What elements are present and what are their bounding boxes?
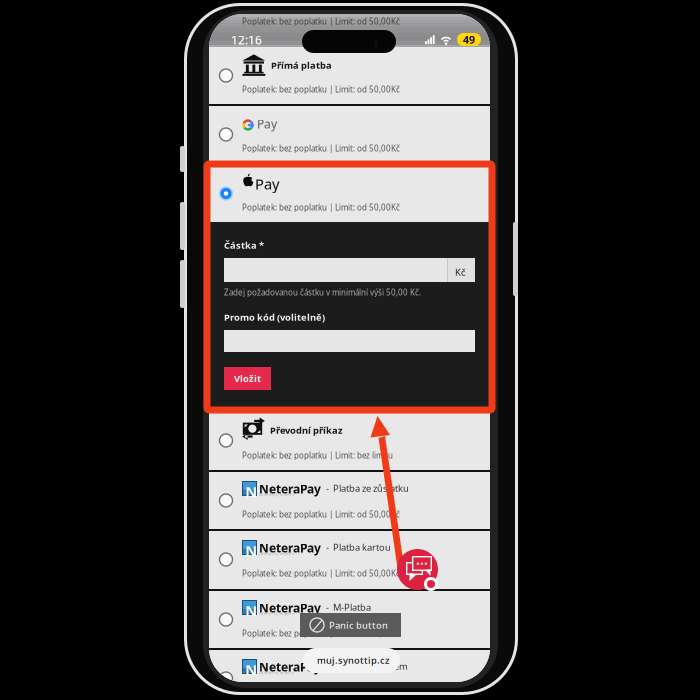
staticText: - Platba převodem bbox=[326, 660, 408, 672]
staticText: Poplatek: bez poplatku | Limit: od 50,00… bbox=[242, 202, 400, 213]
staticText: NeteraPay bbox=[259, 481, 321, 497]
staticText: Pay bbox=[255, 174, 279, 193]
staticText: pay everything, everywhere bbox=[259, 493, 295, 496]
staticText: Přímá platba bbox=[271, 59, 332, 71]
staticText: N bbox=[245, 482, 257, 501]
staticText: Poplatek: bez poplatku | Limit: od 50,00… bbox=[242, 687, 400, 698]
button[interactable]: N bbox=[209, 14, 490, 71]
staticText: Převodní příkaz bbox=[270, 424, 343, 436]
staticText: Poplatek: bez poplatku | Limit: od 50,00… bbox=[242, 628, 400, 639]
button[interactable]: N bbox=[209, 14, 490, 71]
staticText: - Platba kartou bbox=[326, 541, 391, 553]
staticText: NeteraPay bbox=[259, 540, 321, 556]
staticText: N bbox=[245, 601, 257, 620]
button[interactable]: Vložit bbox=[224, 367, 271, 390]
button[interactable]: Přímá platba bbox=[209, 14, 490, 71]
staticText: Poplatek: bez poplatku | Limit: od 50,00… bbox=[242, 509, 400, 520]
button[interactable]: Převodní příkaz bbox=[209, 14, 490, 73]
staticText: Zadej požadovanou částku v minimální výš… bbox=[224, 287, 421, 298]
staticText: N bbox=[245, 660, 257, 679]
button[interactable]: Pay bbox=[209, 14, 490, 71]
staticText: pay everything, everywhere bbox=[259, 552, 295, 555]
staticText: Poplatek: bez poplatku | Limit: od 50,00… bbox=[242, 84, 400, 95]
staticText: pay everything, everywhere bbox=[259, 612, 295, 615]
button[interactable]: Pay bbox=[209, 14, 490, 71]
button[interactable]: Panic button bbox=[0, 0, 700, 700]
staticText: Kč bbox=[455, 266, 465, 278]
staticText: N bbox=[245, 541, 257, 560]
staticText: NeteraPay bbox=[259, 659, 321, 675]
staticText: Poplatek: bez poplatku | Limit: bez limi… bbox=[242, 450, 393, 461]
staticText: Poplatek: bez poplatku | Limit: od 50,00… bbox=[242, 143, 400, 154]
staticText: Panic button bbox=[329, 619, 388, 631]
staticText: - M-Platba bbox=[326, 601, 371, 613]
button[interactable]: N bbox=[209, 14, 490, 71]
button[interactable]: Open chat bbox=[0, 0, 700, 700]
button[interactable]: N bbox=[209, 14, 490, 71]
staticText: Poplatek: bez poplatku | Limit: od 50,00… bbox=[242, 568, 400, 579]
staticText: Vložit bbox=[234, 372, 261, 385]
staticText: 12:16 bbox=[231, 32, 262, 48]
staticText: Promo kód (volitelně) bbox=[224, 311, 325, 323]
staticText: - Platba ze zůstatku bbox=[326, 482, 409, 494]
staticText: 49 bbox=[463, 32, 475, 47]
staticText: Pay bbox=[257, 116, 277, 132]
staticText: Částka * bbox=[224, 239, 264, 251]
staticText: Poplatek: bez poplatku | Limit: od 50,00… bbox=[242, 16, 400, 27]
staticText: pay everything, everywhere bbox=[259, 671, 295, 674]
staticText: NeteraPay bbox=[259, 600, 321, 616]
staticText: muj.synottip.cz bbox=[317, 654, 389, 666]
